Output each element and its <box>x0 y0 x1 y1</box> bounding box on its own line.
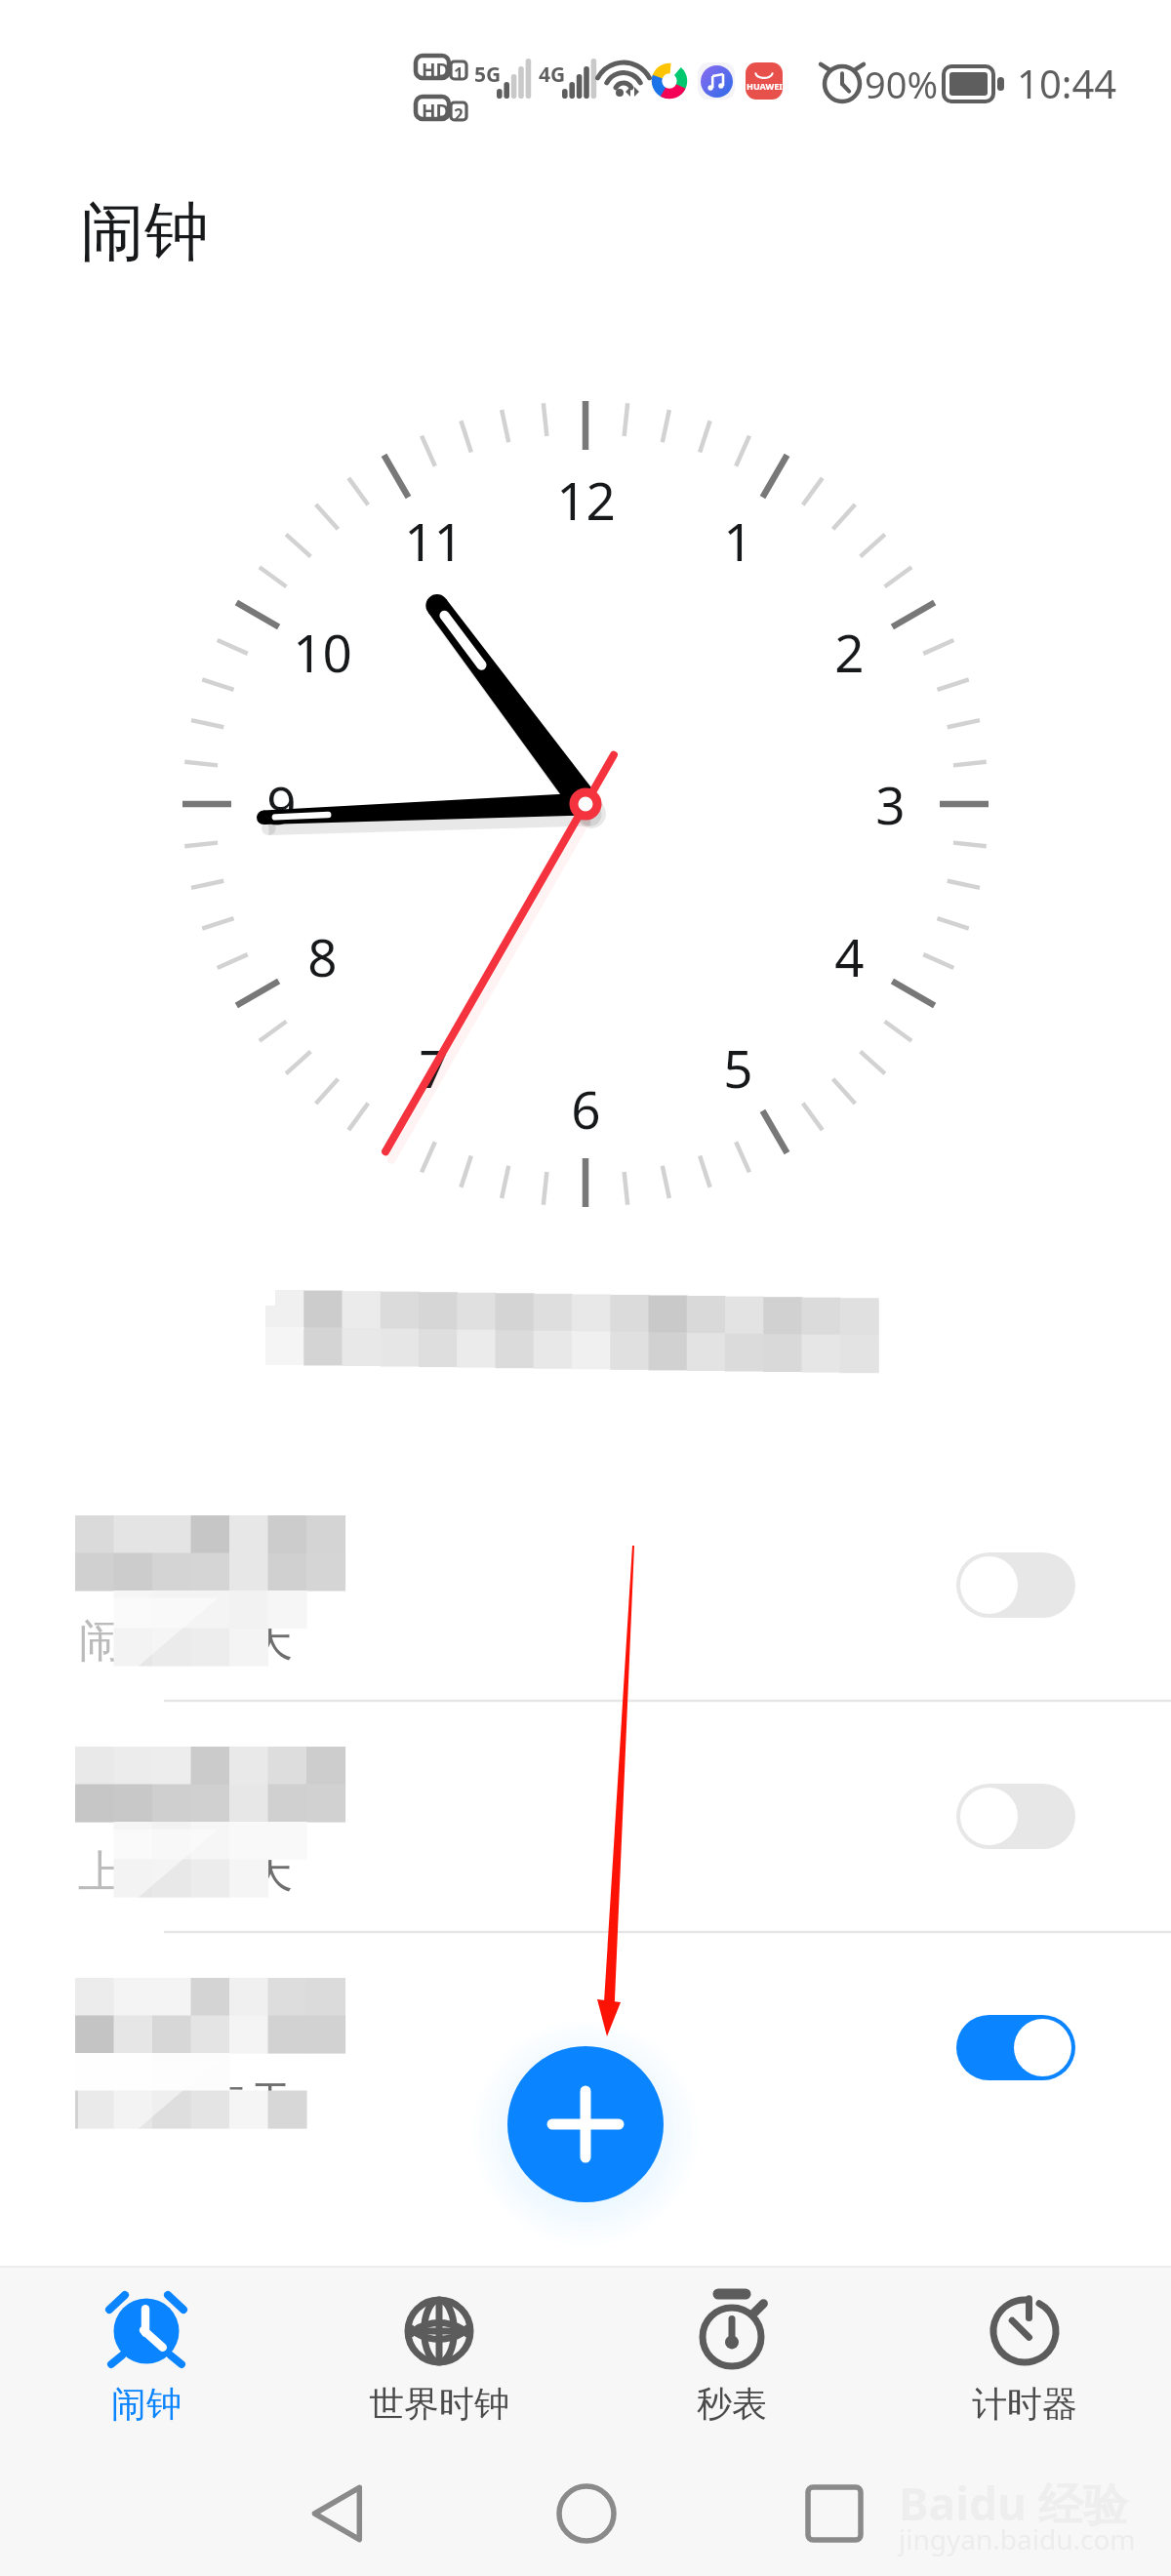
staticText: 11 <box>404 505 464 576</box>
staticText: 11:40 <box>78 1959 283 2069</box>
staticText: 5G <box>474 60 502 89</box>
staticText: 8:30 <box>78 1728 237 1837</box>
button[interactable]: Alarm off <box>956 1552 1075 1618</box>
staticText: 10 <box>293 617 352 687</box>
staticText: 上班, 每天 <box>78 1839 294 1901</box>
staticText: 3 <box>875 769 906 839</box>
staticText: 2 <box>834 617 865 687</box>
button[interactable]: 秒表 <box>585 2267 878 2462</box>
staticText: 4G <box>539 60 566 89</box>
staticText: 10:44 <box>1017 57 1117 109</box>
button[interactable]: 世界时钟 <box>293 2267 585 2462</box>
staticText: 1 <box>723 505 753 576</box>
staticText: 1 <box>454 62 464 85</box>
staticText: jingyan.baidu.com <box>899 2520 1136 2557</box>
staticText: 4 <box>834 921 865 991</box>
staticText: 8 <box>307 921 338 991</box>
button[interactable]: Alarm off <box>956 1784 1075 1849</box>
staticText: 闹钟 <box>111 2382 182 2426</box>
staticText: HD <box>422 58 450 83</box>
button[interactable]: 闹钟 <box>0 2267 293 2462</box>
button[interactable]: Recents <box>710 2455 958 2572</box>
button[interactable]: Home <box>462 2455 710 2572</box>
staticText: 7:20 <box>78 1497 237 1606</box>
staticText: 闹钟 <box>80 191 209 272</box>
button[interactable]: 7:20 <box>0 1469 1171 1701</box>
button[interactable]: 计时器 <box>878 2267 1171 2462</box>
staticText: 7 <box>419 1032 449 1103</box>
staticText: 90% <box>865 59 939 109</box>
staticText: HD <box>422 99 450 124</box>
staticText: 闹钟, 每天 <box>78 1608 294 1670</box>
staticText: Baidu 经验 <box>899 2473 1128 2534</box>
staticText: 9 <box>266 769 297 839</box>
button[interactable]: Back <box>213 2455 462 2572</box>
button[interactable]: 11:40 <box>0 1932 1171 2163</box>
staticText: 秒表 <box>697 2382 767 2426</box>
button[interactable]: Alarm on <box>956 2015 1075 2080</box>
button[interactable]: 8:30 <box>0 1701 1171 1932</box>
staticText: HUAWEI <box>747 80 783 92</box>
button[interactable]: Add alarm <box>507 2046 664 2202</box>
staticText: 午休, 每天 <box>78 2071 294 2132</box>
staticText: 6 <box>571 1073 601 1144</box>
staticText: 12 <box>556 464 616 535</box>
staticText: 世界时钟 <box>369 2382 509 2426</box>
staticText: 5 <box>723 1032 753 1103</box>
staticText: 2 <box>454 103 464 126</box>
staticText: 计时器 <box>972 2382 1077 2426</box>
